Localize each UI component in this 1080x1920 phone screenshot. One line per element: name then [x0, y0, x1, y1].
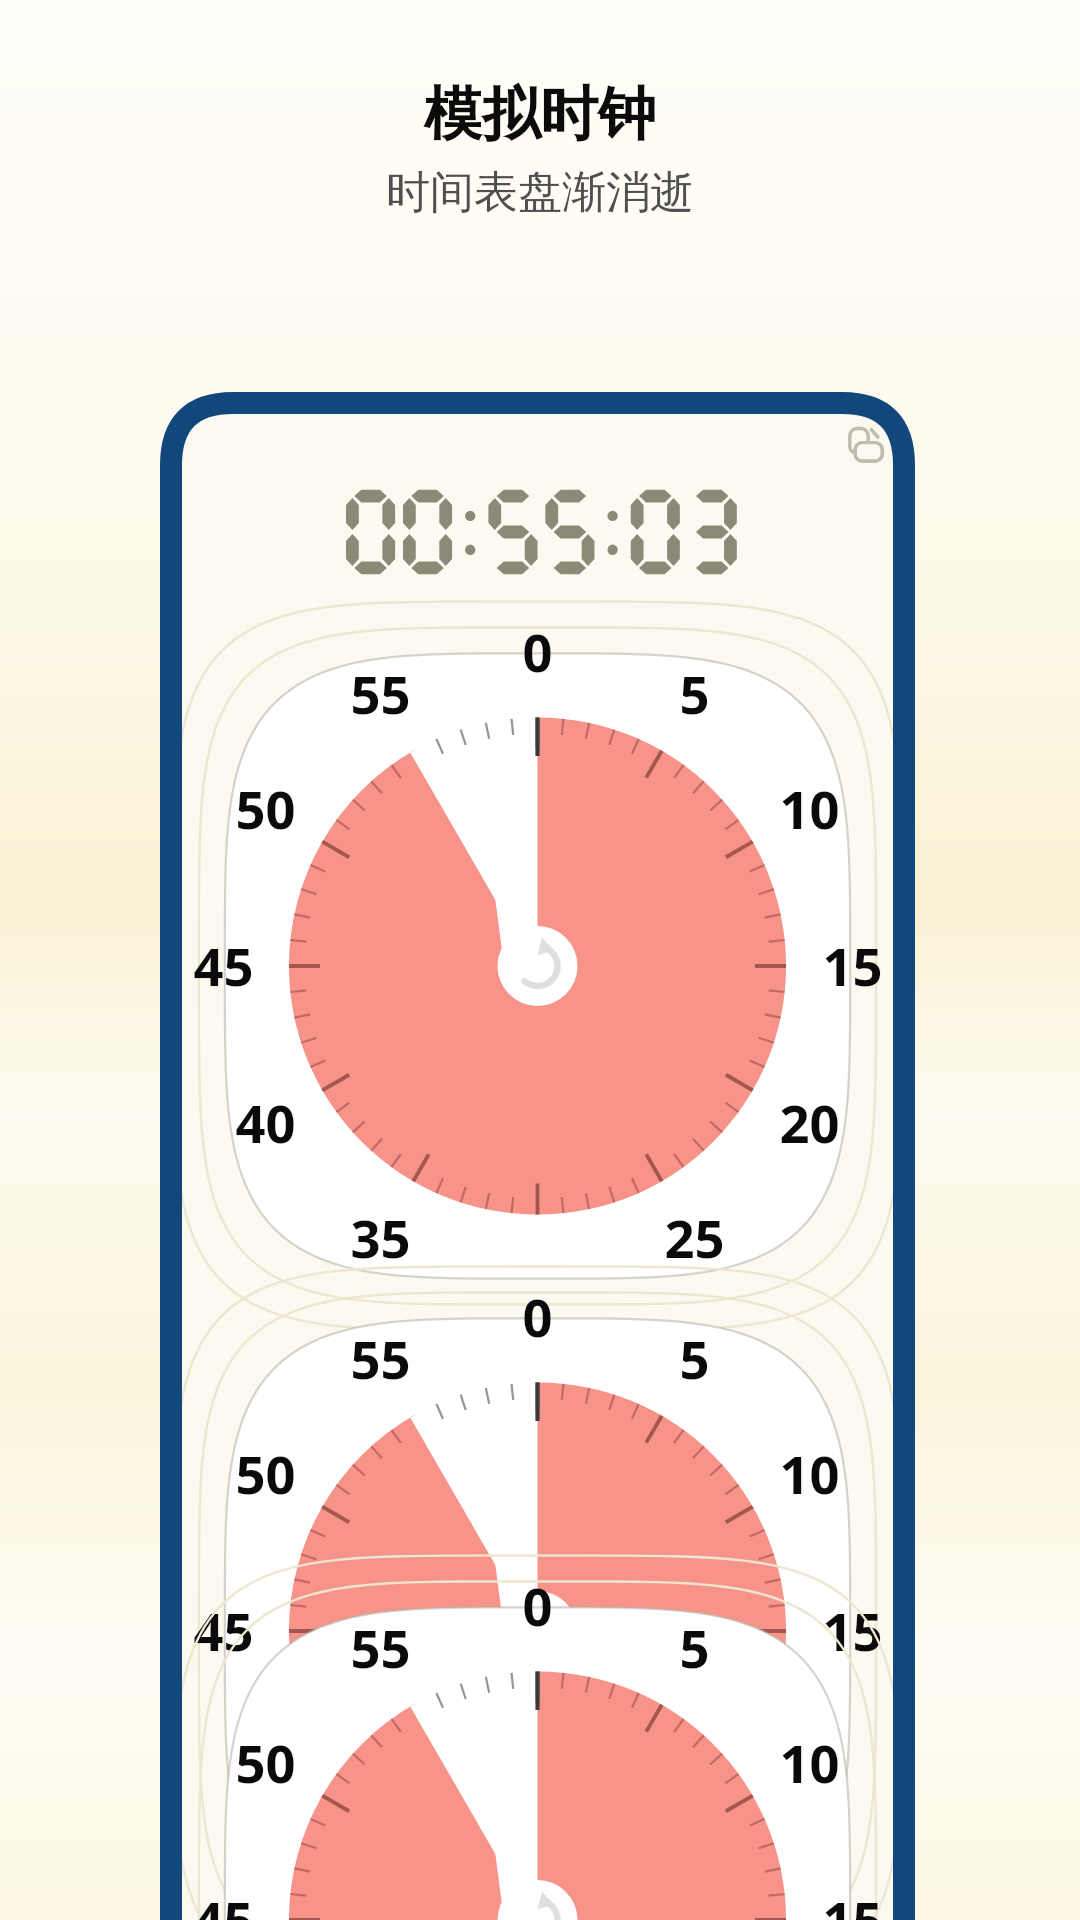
staticText: 5: [679, 1612, 710, 1684]
staticText: 0: [522, 1570, 553, 1642]
button[interactable]: Timer dial 55 minutes: [160, 1261, 915, 1920]
staticText: 5: [679, 1323, 710, 1395]
staticText: 模拟时钟: [424, 78, 656, 151]
staticText: 0: [522, 616, 553, 688]
staticText: 20: [779, 1752, 840, 1824]
staticText: 55: [350, 1323, 411, 1395]
staticText: 45: [193, 930, 254, 1002]
staticText: 20: [779, 1087, 840, 1159]
staticText: 50: [235, 1727, 296, 1799]
staticText: 40: [235, 1087, 296, 1159]
staticText: 时间表盘渐消逝: [386, 165, 694, 220]
staticText: 50: [235, 1438, 296, 1510]
staticText: 45: [193, 1884, 254, 1920]
staticText: 15: [822, 1595, 883, 1667]
staticText: 5: [679, 658, 710, 730]
staticText: 0: [522, 1281, 553, 1353]
button[interactable]: Timer dial 55 minutes: [160, 596, 915, 1336]
staticText: 15: [822, 930, 883, 1002]
button[interactable]: Rotate screen: [839, 421, 893, 475]
staticText: 15: [822, 1884, 883, 1920]
staticText: 50: [235, 773, 296, 845]
staticText: 10: [779, 773, 840, 845]
button[interactable]: Timer dial 55 minutes: [160, 1550, 915, 1920]
staticText: 25: [664, 1202, 725, 1274]
staticText: 10: [779, 1438, 840, 1510]
staticText: 40: [235, 1752, 296, 1824]
staticText: 55: [350, 658, 411, 730]
staticText: 35: [350, 1202, 411, 1274]
staticText: 45: [193, 1595, 254, 1667]
staticText: 55: [350, 1612, 411, 1684]
staticText: 10: [779, 1727, 840, 1799]
